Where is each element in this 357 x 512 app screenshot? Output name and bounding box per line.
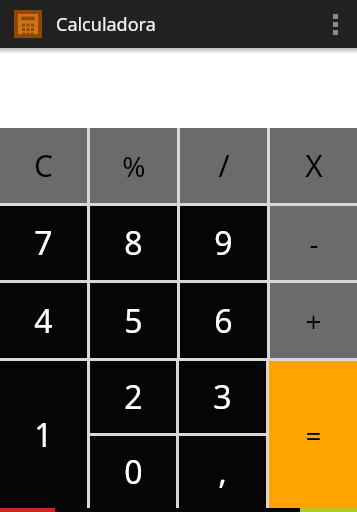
button[interactable]: X (270, 128, 357, 203)
other: App icon (14, 10, 42, 38)
button[interactable]: - (270, 206, 357, 280)
button[interactable]: 7 (0, 206, 87, 280)
button[interactable]: 5 (90, 283, 177, 358)
button[interactable]: % (90, 128, 177, 203)
button[interactable]: 8 (90, 206, 177, 280)
staticText: 1 (34, 413, 53, 457)
button[interactable]: + (270, 283, 357, 358)
staticText: 0 (124, 450, 143, 494)
staticText: / (218, 145, 230, 186)
staticText: C (34, 145, 53, 186)
staticText: 6 (214, 299, 233, 343)
staticText: % (122, 147, 146, 185)
button[interactable]: , (179, 436, 266, 508)
button[interactable]: C (0, 128, 87, 203)
staticText: 3 (213, 375, 232, 419)
button[interactable]: / (180, 128, 267, 203)
staticText: Calculadora (56, 12, 156, 37)
button[interactable]: 1 (0, 361, 87, 508)
staticText: 2 (124, 375, 143, 419)
button[interactable]: 2 (90, 361, 176, 433)
button[interactable]: 4 (0, 283, 87, 358)
staticText: 5 (124, 299, 143, 343)
staticText: 9 (214, 221, 233, 265)
staticText: 7 (34, 221, 53, 265)
staticText: , (218, 450, 227, 494)
button[interactable]: 6 (180, 283, 267, 358)
staticText: - (309, 224, 319, 262)
staticText: = (305, 416, 322, 454)
staticText: 4 (34, 299, 53, 343)
staticText: + (305, 302, 322, 340)
button[interactable]: 0 (90, 436, 176, 508)
staticText: 8 (124, 221, 143, 265)
button[interactable]: More options (313, 0, 357, 48)
button[interactable]: 3 (179, 361, 266, 433)
button[interactable]: 9 (180, 206, 267, 280)
button[interactable]: = (269, 361, 357, 508)
staticText: X (305, 145, 323, 186)
